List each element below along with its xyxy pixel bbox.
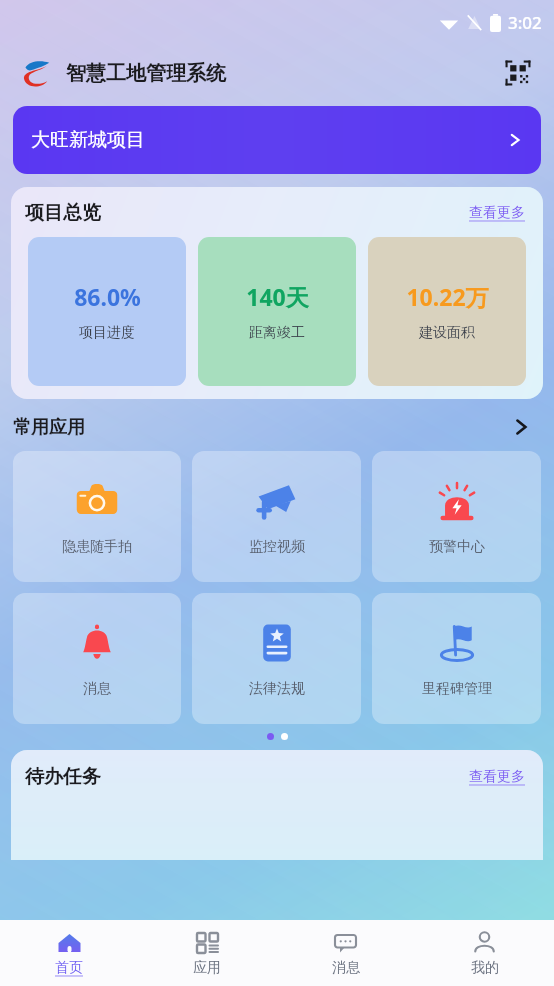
staticText: 项目总览 <box>25 201 101 225</box>
staticText: 待办任务 <box>25 765 101 789</box>
staticText: 大旺新城项目 <box>31 128 145 152</box>
button[interactable]: 隐患随手拍 <box>13 451 181 582</box>
staticText: 智慧工地管理系统 <box>66 61 226 86</box>
staticText: 监控视频 <box>249 538 305 556</box>
button[interactable]: 首页 <box>0 920 138 986</box>
staticText: 查看更多 <box>469 204 525 222</box>
staticText: 消息 <box>83 680 111 698</box>
staticText: 10.22万 <box>406 281 489 312</box>
button[interactable]: 查看更多 <box>465 200 529 226</box>
button[interactable]: 大旺新城项目 <box>13 106 541 174</box>
staticText: 140天 <box>246 281 309 312</box>
button[interactable]: 140天 <box>198 237 356 386</box>
button[interactable]: 扫一扫 <box>500 55 536 91</box>
button[interactable]: 86.0% <box>28 237 186 386</box>
staticText: 首页 <box>55 959 83 977</box>
staticText: 法律法规 <box>249 680 305 698</box>
button[interactable]: 消息 <box>13 593 181 724</box>
staticText: 86.0% <box>74 281 141 312</box>
staticText: 消息 <box>332 959 360 977</box>
staticText: 常用应用 <box>13 416 85 439</box>
staticText: 建设面积 <box>419 324 475 342</box>
button[interactable]: 法律法规 <box>192 593 361 724</box>
staticText: 3:02 <box>508 11 542 34</box>
button[interactable]: 里程碑管理 <box>372 593 541 724</box>
button[interactable]: 监控视频 <box>192 451 361 582</box>
staticText: 里程碑管理 <box>422 680 492 698</box>
staticText: 应用 <box>193 959 221 977</box>
button[interactable]: 更多应用 <box>506 412 536 442</box>
staticText: 查看更多 <box>469 768 525 786</box>
button[interactable]: 我的 <box>415 920 554 986</box>
staticText: 隐患随手拍 <box>62 538 132 556</box>
staticText: 项目进度 <box>79 324 135 342</box>
button[interactable]: 查看更多 <box>465 764 529 790</box>
button[interactable]: 10.22万 <box>368 237 526 386</box>
button[interactable]: 预警中心 <box>372 451 541 582</box>
staticText: 距离竣工 <box>249 324 305 342</box>
button[interactable]: 应用 <box>138 920 276 986</box>
staticText: 我的 <box>471 959 499 977</box>
staticText: 预警中心 <box>429 538 485 556</box>
button[interactable]: 消息 <box>276 920 415 986</box>
